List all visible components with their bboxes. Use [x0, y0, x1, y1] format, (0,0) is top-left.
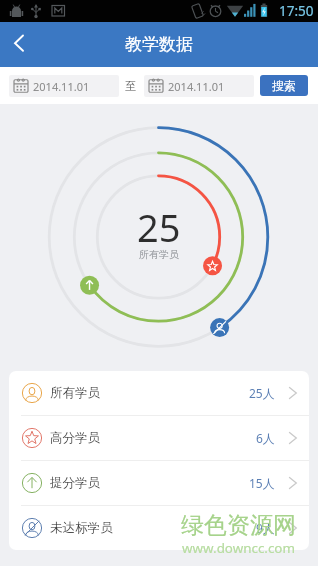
- staticText: 25: [137, 201, 181, 253]
- button[interactable]: 未达标学员: [9, 506, 309, 550]
- staticText: 绿色资源网: [181, 511, 296, 540]
- staticText: 25人: [249, 385, 275, 401]
- staticText: 17:50: [279, 2, 314, 20]
- staticText: 教学数据: [125, 34, 193, 55]
- staticText: 提分学员: [50, 475, 101, 491]
- staticText: 未达标学员: [50, 520, 113, 536]
- staticText: 15人: [249, 475, 275, 491]
- button[interactable]: 搜索: [260, 75, 308, 96]
- button[interactable]: 2014.11.01: [9, 75, 119, 97]
- button[interactable]: 2014.11.01: [144, 75, 254, 97]
- staticText: 6人: [256, 430, 275, 446]
- staticText: www.downcc.com: [182, 539, 295, 557]
- staticText: 2014.11.01: [168, 79, 225, 94]
- button[interactable]: Back: [0, 22, 38, 67]
- staticText: 所有学员: [50, 385, 101, 401]
- button[interactable]: 所有学员: [9, 371, 309, 415]
- staticText: 高分学员: [50, 430, 101, 446]
- button[interactable]: 提分学员: [9, 461, 309, 505]
- staticText: 搜索: [272, 78, 296, 93]
- staticText: 至: [125, 79, 136, 93]
- staticText: 9人: [256, 520, 275, 536]
- staticText: 2014.11.01: [33, 79, 90, 94]
- button[interactable]: 高分学员: [9, 416, 309, 460]
- staticText: 所有学员: [139, 248, 179, 261]
